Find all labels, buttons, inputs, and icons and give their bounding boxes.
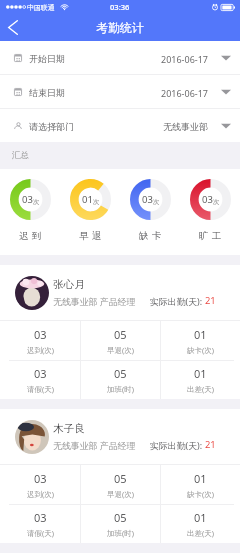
button[interactable]: 结束日期	[0, 75, 240, 108]
staticText: 01	[194, 510, 207, 525]
staticText: 03	[34, 510, 47, 525]
staticText: 汇总	[12, 150, 29, 161]
button[interactable]: 05	[81, 321, 160, 360]
staticText: 迟到(次)	[27, 489, 54, 499]
staticText: 01	[194, 471, 207, 486]
staticText: 03	[34, 366, 47, 381]
staticText: 03	[22, 193, 33, 206]
button[interactable]: 03	[0, 465, 80, 504]
button[interactable]: 开始日期	[0, 41, 240, 74]
staticText: 05	[114, 471, 127, 486]
button[interactable]: 01	[161, 321, 240, 360]
staticText: 05	[114, 327, 127, 342]
staticText: 05	[114, 366, 127, 381]
staticText: 2016-06-17	[161, 87, 208, 99]
staticText: 早退(次)	[107, 345, 134, 355]
staticText: 早退	[79, 230, 105, 242]
staticText: 早退(次)	[107, 489, 134, 499]
staticText: 请假(天)	[27, 528, 54, 538]
staticText: 加班(时)	[107, 528, 134, 538]
staticText: 21	[205, 294, 216, 307]
staticText: 01	[194, 327, 207, 342]
staticText: 结束日期	[29, 87, 65, 98]
staticText: 次	[93, 198, 100, 206]
button[interactable]: 05	[81, 505, 160, 543]
button[interactable]: 03	[0, 505, 80, 543]
button[interactable]: 01	[60, 169, 120, 255]
staticText: 开始日期	[29, 53, 65, 64]
staticText: 次	[33, 198, 40, 206]
staticText: 出差(天)	[187, 528, 214, 538]
staticText: 旷工	[199, 230, 225, 242]
button[interactable]: 03	[120, 169, 180, 255]
staticText: 01	[82, 193, 93, 206]
staticText: 无线事业部 产品经理	[53, 439, 136, 451]
staticText: 迟到	[19, 230, 45, 242]
staticText: 考勤统计	[96, 21, 144, 36]
staticText: 21	[205, 438, 216, 451]
staticText: 03	[142, 193, 153, 206]
staticText: 03	[202, 193, 213, 206]
staticText: 缺卡(次)	[187, 489, 214, 499]
button[interactable]: 03	[0, 361, 80, 399]
staticText: 缺卡(次)	[187, 345, 214, 355]
button[interactable]: 01	[161, 361, 240, 399]
staticText: 03:36	[110, 2, 130, 12]
button[interactable]: 03	[0, 169, 60, 255]
staticText: 无线事业部 产品经理	[53, 295, 136, 307]
staticText: 03	[34, 471, 47, 486]
staticText: 张心月	[53, 278, 85, 291]
button[interactable]: 03	[180, 169, 240, 255]
staticText: 2016-06-17	[161, 53, 208, 65]
staticText: 中国联通	[27, 3, 55, 12]
staticText: 木子良	[53, 422, 85, 435]
button[interactable]: Back	[0, 14, 28, 41]
staticText: 次	[213, 198, 220, 206]
staticText: 请假(天)	[27, 384, 54, 394]
button[interactable]: 请选择部门	[0, 109, 240, 142]
staticText: 加班(时)	[107, 384, 134, 394]
staticText: 缺卡	[139, 230, 165, 242]
button[interactable]: 01	[161, 465, 240, 504]
staticText: 出差(天)	[187, 384, 214, 394]
staticText: 05	[114, 510, 127, 525]
button[interactable]: 木子良	[0, 409, 240, 543]
staticText: 无线事业部	[163, 121, 208, 132]
staticText: 实际出勤(天):	[150, 439, 205, 451]
button[interactable]: 张心月	[0, 265, 240, 399]
staticText: 请选择部门	[29, 121, 74, 132]
button[interactable]: 05	[81, 361, 160, 399]
button[interactable]: 03	[0, 321, 80, 360]
button[interactable]: 01	[161, 505, 240, 543]
staticText: 次	[153, 198, 160, 206]
staticText: 03	[34, 327, 47, 342]
staticText: 迟到(次)	[27, 345, 54, 355]
button[interactable]: 05	[81, 465, 160, 504]
staticText: 实际出勤(天):	[150, 295, 205, 307]
staticText: 01	[194, 366, 207, 381]
